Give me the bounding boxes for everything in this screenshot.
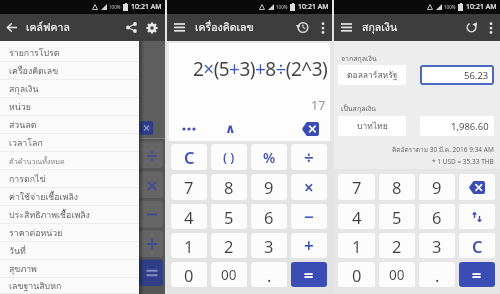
button[interactable] xyxy=(489,22,493,34)
staticText: ( ) xyxy=(223,149,235,166)
button[interactable]: 0 xyxy=(171,262,207,287)
staticText: ดอลลาร์สหรัฐ xyxy=(347,68,398,82)
button[interactable] xyxy=(459,204,495,229)
staticText: 17 xyxy=(311,97,326,114)
staticText: 1 xyxy=(184,235,194,257)
button[interactable]: สกุลเงิน xyxy=(0,80,139,98)
staticText: 9 xyxy=(432,176,442,198)
button[interactable]: เครื่องคิดเลข xyxy=(0,62,139,80)
button[interactable] xyxy=(321,22,325,34)
staticText: เป็นสกุลเงิน xyxy=(341,103,377,114)
button[interactable]: รายการโปรด xyxy=(0,44,139,62)
button[interactable]: 8 xyxy=(379,174,415,200)
button[interactable]: ราคาต่อหน่วย xyxy=(0,224,139,242)
staticText: ส่วนลด xyxy=(9,118,37,132)
staticText: 00 xyxy=(389,266,405,284)
button[interactable] xyxy=(126,22,137,33)
button[interactable] xyxy=(174,23,185,32)
button[interactable]: 00 xyxy=(379,262,415,287)
staticText: 8 xyxy=(224,176,234,198)
button[interactable]: ประสิทธิภาพเชื้อเพลิง xyxy=(0,206,139,224)
button[interactable]: . xyxy=(251,262,287,287)
button[interactable]: วันที่ xyxy=(0,242,139,260)
staticText: 100% xyxy=(276,4,288,10)
staticText: วันที่ xyxy=(9,244,26,258)
staticText: % xyxy=(263,148,276,167)
button[interactable]: 4 xyxy=(338,204,375,229)
staticText: 4 xyxy=(184,206,194,228)
button[interactable]: หน่วย xyxy=(0,98,139,116)
button[interactable]: 56.23 xyxy=(420,65,494,85)
staticText: ประสิทธิภาพเชื้อเพลิง xyxy=(9,208,90,222)
button[interactable]: ÷ xyxy=(291,144,327,170)
button[interactable]: 7 xyxy=(171,174,207,200)
button[interactable]: . xyxy=(419,262,455,287)
button[interactable]: 6 xyxy=(419,204,455,229)
button[interactable]: = xyxy=(291,262,327,287)
staticText: เคล์ฟคาล xyxy=(26,19,70,36)
button[interactable]: 1,986.60 xyxy=(420,116,494,136)
button[interactable]: 4 xyxy=(171,204,207,229)
staticText: 100% xyxy=(444,4,456,10)
button[interactable]: ดอลลาร์สหรัฐ xyxy=(338,65,406,85)
button[interactable] xyxy=(341,23,352,32)
button[interactable]: 1 xyxy=(171,233,207,258)
button[interactable]: + xyxy=(291,233,327,258)
button[interactable] xyxy=(466,22,477,33)
button[interactable]: ( ) xyxy=(211,144,247,170)
button[interactable]: − xyxy=(291,204,327,229)
button[interactable]: 9 xyxy=(251,174,287,200)
button[interactable]: ∧ xyxy=(225,121,236,136)
button[interactable]: ค่าใช้จ่ายเชื้อเพลิง xyxy=(0,188,139,206)
staticText: + xyxy=(304,234,314,257)
staticText: เลขฐานสิบหก xyxy=(9,279,62,293)
staticText: เครื่องคิดเลข xyxy=(195,19,254,36)
staticText: 7 xyxy=(184,176,194,198)
staticText: 5 xyxy=(224,206,234,228)
button[interactable]: 1 xyxy=(338,233,375,258)
button[interactable] xyxy=(182,127,197,131)
staticText: . xyxy=(267,264,272,286)
button[interactable]: 3 xyxy=(419,233,455,258)
button[interactable] xyxy=(296,21,309,34)
button[interactable]: บาทไทย xyxy=(338,116,406,136)
button[interactable] xyxy=(7,23,17,32)
button[interactable]: เวลาโลก xyxy=(0,134,139,152)
staticText: 2 xyxy=(224,235,234,257)
button[interactable]: 2 xyxy=(379,233,415,258)
staticText: 0 xyxy=(184,264,194,286)
button[interactable] xyxy=(302,122,319,136)
staticText: หน่วย xyxy=(9,100,31,114)
button[interactable]: ตัวคำนวณทั้งหมด xyxy=(0,152,139,170)
button[interactable]: C xyxy=(171,144,207,170)
button[interactable]: 9 xyxy=(419,174,455,200)
button[interactable]: 2 xyxy=(211,233,247,258)
staticText: * 1 USD = 35.33 THB xyxy=(432,157,494,166)
button[interactable]: 7 xyxy=(338,174,375,200)
button[interactable] xyxy=(146,22,158,34)
button[interactable]: 00 xyxy=(211,262,247,287)
button[interactable]: 5 xyxy=(211,204,247,229)
staticText: ÷ xyxy=(304,146,314,169)
button[interactable]: 5 xyxy=(379,204,415,229)
button[interactable]: เลขฐานสิบหก xyxy=(0,278,139,294)
button[interactable]: 0 xyxy=(338,262,375,287)
button[interactable]: ส่วนลด xyxy=(0,116,139,134)
button[interactable] xyxy=(459,174,495,200)
button[interactable]: × xyxy=(291,174,327,200)
staticText: คิดอัตราตาม 30 มี.ค. 2016 9:34 AM xyxy=(392,145,494,155)
button[interactable]: 3 xyxy=(251,233,287,258)
staticText: = xyxy=(472,264,482,286)
button[interactable]: การตกไข่ xyxy=(0,170,139,188)
button[interactable]: C xyxy=(459,233,495,258)
button[interactable]: 6 xyxy=(251,204,287,229)
staticText: 3 xyxy=(264,235,274,257)
button[interactable]: = xyxy=(459,262,495,287)
staticText: 100% xyxy=(109,4,121,10)
button[interactable]: % xyxy=(251,144,287,170)
staticText: = xyxy=(304,264,314,286)
staticText: สกุลเงิน xyxy=(362,19,398,36)
staticText: บาทไทย xyxy=(357,119,388,133)
button[interactable]: 8 xyxy=(211,174,247,200)
button[interactable]: สุขภาพ xyxy=(0,260,139,278)
